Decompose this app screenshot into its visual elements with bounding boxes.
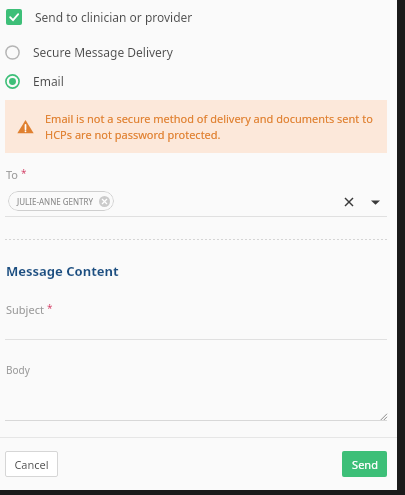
- staticText: Message Content: [6, 262, 119, 280]
- button[interactable]: Open dropdown: [365, 192, 385, 212]
- button[interactable]: Send to clinician or provider: [0, 4, 397, 30]
- button[interactable]: Clear: [339, 192, 359, 212]
- staticText: Secure Message Delivery: [33, 44, 173, 60]
- other: Remove recipient: [99, 196, 110, 207]
- staticText: Body: [6, 363, 30, 377]
- staticText: Email: [33, 73, 64, 89]
- staticText: Send to clinician or provider: [35, 9, 193, 25]
- staticText: Email is not a secure method of delivery…: [45, 111, 377, 142]
- button[interactable]: JULIE-ANNE GENTRY: [8, 191, 114, 211]
- staticText: To: [6, 167, 19, 182]
- button[interactable]: Secure Message Delivery: [0, 41, 397, 63]
- staticText: Cancel: [14, 457, 49, 472]
- staticText: Send: [352, 457, 378, 472]
- staticText: JULIE-ANNE GENTRY: [17, 196, 94, 207]
- button[interactable]: Email: [0, 70, 397, 92]
- staticText: Subject: [6, 302, 44, 317]
- staticText: *: [21, 166, 27, 180]
- staticText: *: [47, 301, 53, 315]
- button[interactable]: Send: [342, 451, 387, 477]
- button[interactable]: Cancel: [5, 451, 58, 477]
